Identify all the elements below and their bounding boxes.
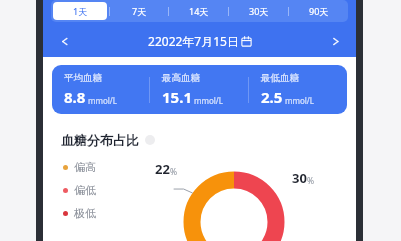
staticText: 14天 [189,5,209,17]
staticText: 偏高 [74,160,96,174]
staticText: 22022年7月15日 [148,33,239,49]
staticText: 平均血糖 [64,72,102,84]
button[interactable]: 7天 [112,2,166,20]
staticText: % [170,166,178,178]
staticText: 90天 [309,5,329,17]
staticText: mmol/L [285,95,315,106]
staticText: 8.8 [64,87,86,107]
button[interactable]: Information [145,135,155,145]
staticText: 22 [155,160,170,178]
staticText: 30 [292,169,307,187]
button[interactable]: 偏高 [63,160,96,174]
button[interactable]: 平均血糖 [52,65,347,114]
button[interactable]: 22022年7月15日 [75,28,324,54]
button[interactable]: Next day [324,30,346,52]
staticText: 2.5 [261,87,283,107]
staticText: 最低血糖 [261,72,299,84]
button[interactable]: Previous day [53,30,75,52]
staticText: 15.1 [162,87,192,107]
button[interactable]: 90天 [291,2,346,20]
staticText: 7天 [132,5,147,17]
staticText: 30天 [249,5,269,17]
staticText: % [307,175,315,187]
staticText: 偏低 [74,183,96,197]
staticText: 极低 [74,206,96,220]
button[interactable]: 偏低 [63,183,96,197]
button[interactable]: 14天 [171,2,226,20]
staticText: 血糖分布占比 [61,132,139,148]
staticText: mmol/L [88,95,118,106]
staticText: 最高血糖 [162,72,200,84]
button[interactable]: 1天 [53,2,107,20]
staticText: mmol/L [194,95,224,106]
staticText: 1天 [73,5,88,17]
button[interactable]: 极低 [63,206,96,220]
button[interactable]: 30天 [231,2,286,20]
